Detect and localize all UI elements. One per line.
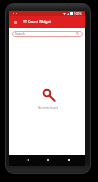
other: Search	[76, 32, 79, 35]
button[interactable]: Search	[12, 31, 83, 37]
button[interactable]: Home	[42, 155, 54, 166]
staticText: Search	[15, 32, 26, 36]
staticText: No items found	[10, 106, 86, 110]
button[interactable]: Back	[22, 155, 34, 166]
button[interactable]: Recent apps	[63, 155, 75, 166]
staticText: YT Count Widget	[23, 19, 51, 24]
button[interactable]: Open navigation menu	[11, 18, 19, 26]
staticText: 100%	[74, 12, 82, 16]
